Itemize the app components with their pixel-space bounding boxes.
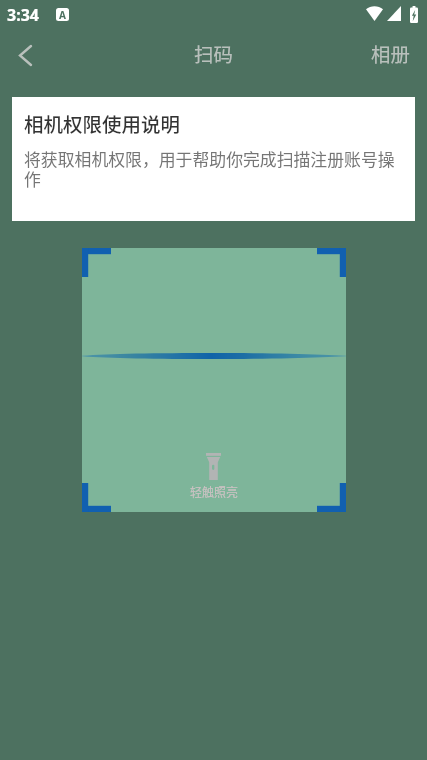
button[interactable]: 相册 [354,31,427,75]
button[interactable]: Back [2,32,48,78]
staticText: 扫码 [194,39,233,67]
staticText: 相册 [371,39,410,67]
button[interactable]: 轻触照亮 [166,448,263,505]
staticText: A [59,8,66,21]
staticText: 相机权限使用说明 [24,109,181,137]
staticText: 将获取相机权限，用于帮助你完成扫描注册账号操作 [24,146,397,191]
staticText: 轻触照亮 [190,483,239,500]
staticText: 3:34 [7,4,39,26]
